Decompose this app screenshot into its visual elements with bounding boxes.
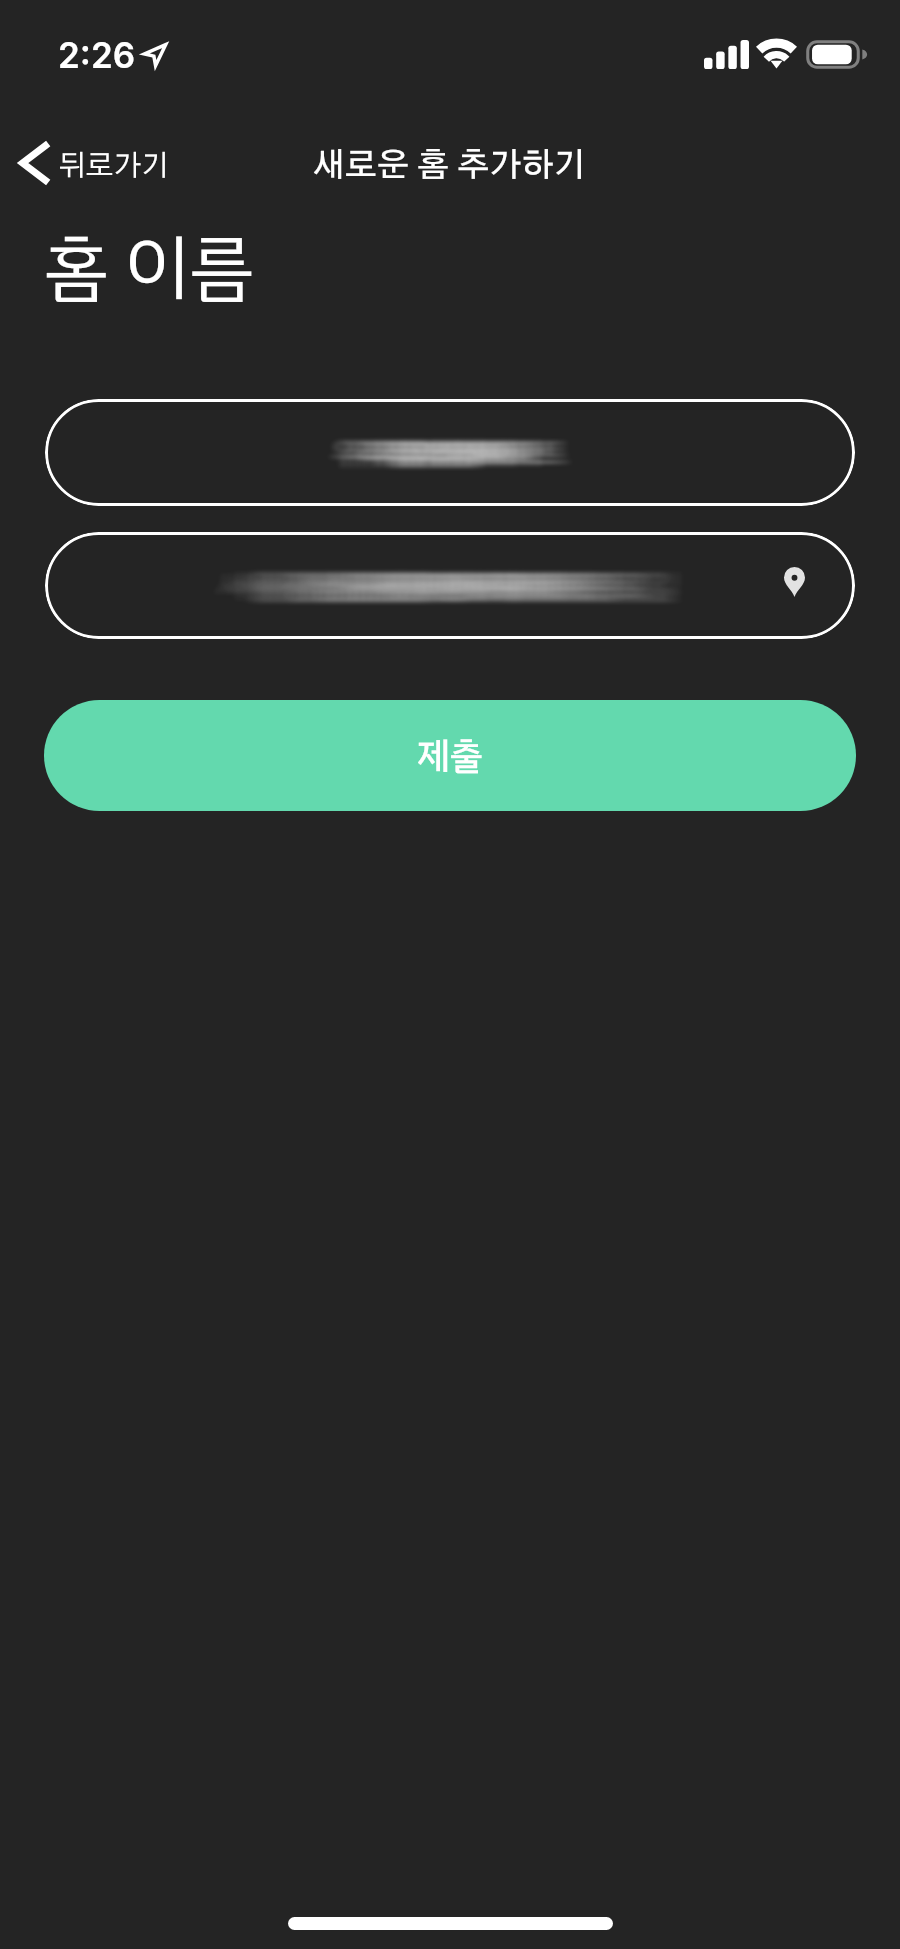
staticText: 서울 강남구 테헤란로길 — [278, 562, 579, 610]
staticText: 제출 — [417, 728, 484, 784]
staticText: 우리집 아파트 — [352, 432, 515, 476]
staticText: 서울 강남구 테헤란로길 — [291, 562, 592, 610]
staticText: 서울 강남구 테헤란로길 — [312, 562, 613, 610]
staticText: 우리집 아파트 — [347, 432, 510, 476]
staticText: 서울 강남구 테헤란로길 — [276, 562, 577, 610]
staticText: 우리집 아파트 — [382, 432, 545, 476]
staticText: 서울 강남구 테헤란로길 — [239, 562, 540, 610]
staticText: 서울 강남구 테헤란로길 — [303, 562, 604, 610]
button[interactable]: 우리집 아파트 — [45, 399, 855, 506]
staticText: 우리집 아파트 — [349, 432, 512, 476]
staticText: 서울 강남구 테헤란로길 — [277, 562, 578, 610]
staticText: 서울 강남구 테헤란로길 — [299, 562, 600, 610]
staticText: 서울 강남구 테헤란로길 — [343, 562, 644, 610]
staticText: 우리집 아파트 — [345, 432, 508, 476]
staticText: 서울 강남구 테헤란로길 — [215, 562, 516, 610]
staticText: 서울 강남구 테헤란로길 — [234, 562, 535, 610]
staticText: 서울 강남구 테헤란로길 — [256, 562, 557, 610]
staticText: 우리집 아파트 — [384, 432, 547, 476]
staticText: 서울 강남구 테헤란로길 — [305, 562, 606, 610]
staticText: 서울 강남구 테헤란로길 — [254, 562, 555, 610]
button[interactable]: 서울 강남구 테헤란로길 — [45, 532, 855, 639]
staticText: 우리집 아파트 — [343, 432, 506, 476]
staticText: 우리집 아파트 — [380, 432, 543, 476]
staticText: 서울 강남구 테헤란로길 — [353, 562, 654, 610]
staticText: 서울 강남구 테헤란로길 — [297, 562, 598, 610]
staticText: 우리집 아파트 — [368, 432, 531, 476]
staticText: 우리집 아파트 — [352, 432, 515, 476]
staticText: 우리집 아파트 — [362, 432, 525, 476]
staticText: 우리집 아파트 — [379, 432, 542, 476]
staticText: 우리집 아파트 — [387, 432, 550, 476]
button[interactable]: Back — [7, 127, 180, 199]
staticText: 서울 강남구 테헤란로길 — [268, 562, 569, 610]
staticText: 우리집 아파트 — [329, 432, 492, 476]
staticText: 우리집 아파트 — [385, 432, 548, 476]
staticText: 우리집 아파트 — [335, 432, 498, 476]
staticText: 우리집 아파트 — [407, 432, 570, 476]
staticText: 우리집 아파트 — [375, 432, 538, 476]
staticText: 서울 강남구 테헤란로길 — [242, 562, 543, 610]
staticText: 우리집 아파트 — [332, 432, 495, 476]
staticText: 새로운 홈 추가하기 — [313, 150, 586, 183]
staticText: 우리집 아파트 — [402, 432, 565, 476]
staticText: 우리집 아파트 — [397, 432, 560, 476]
staticText: 서울 강남구 테헤란로길 — [329, 562, 630, 610]
staticText: 서울 강남구 테헤란로길 — [336, 562, 637, 610]
staticText: 우리집 아파트 — [363, 432, 526, 476]
staticText: 서울 강남구 테헤란로길 — [341, 562, 642, 610]
staticText: 우리집 아파트 — [356, 432, 519, 476]
staticText: 서울 강남구 테헤란로길 — [298, 562, 599, 610]
staticText: 우리집 아파트 — [365, 432, 528, 476]
staticText: 서울 강남구 테헤란로길 — [368, 562, 669, 610]
staticText: 우리집 아파트 — [398, 432, 561, 476]
staticText: 우리집 아파트 — [409, 432, 572, 476]
staticText: 서울 강남구 테헤란로길 — [236, 562, 537, 610]
staticText: 우리집 아파트 — [392, 432, 555, 476]
staticText: 서울 강남구 테헤란로길 — [339, 562, 640, 610]
staticText: 우리집 아파트 — [366, 432, 529, 476]
staticText: 서울 강남구 테헤란로길 — [384, 562, 685, 610]
staticText: 서울 강남구 테헤란로길 — [274, 562, 575, 610]
staticText: 서울 강남구 테헤란로길 — [364, 562, 665, 610]
staticText: 우리집 아파트 — [348, 432, 511, 476]
staticText: 서울 강남구 테헤란로길 — [371, 562, 672, 610]
staticText: 서울 강남구 테헤란로길 — [253, 562, 554, 610]
staticText: 우리집 아파트 — [336, 432, 499, 476]
staticText: 우리집 아파트 — [404, 432, 567, 476]
staticText: 우리집 아파트 — [403, 432, 566, 476]
staticText: 우리집 아파트 — [390, 432, 553, 476]
staticText: 우리집 아파트 — [353, 432, 516, 476]
staticText: 서울 강남구 테헤란로길 — [249, 562, 550, 610]
button[interactable]: Pick location — [768, 556, 820, 608]
button[interactable]: 제출 — [44, 700, 856, 811]
staticText: 우리집 아파트 — [393, 432, 556, 476]
staticText: 우리집 아파트 — [359, 432, 522, 476]
staticText: 서울 강남구 테헤란로길 — [350, 562, 651, 610]
staticText: 우리집 아파트 — [327, 432, 490, 476]
staticText: 우리집 아파트 — [337, 432, 500, 476]
staticText: 서울 강남구 테헤란로길 — [326, 562, 627, 610]
staticText: 서울 강남구 테헤란로길 — [370, 562, 671, 610]
staticText: 우리집 아파트 — [389, 432, 552, 476]
staticText: 서울 강남구 테헤란로길 — [260, 562, 561, 610]
staticText: 우리집 아파트 — [340, 432, 503, 476]
staticText: 서울 강남구 테헤란로길 — [301, 562, 602, 610]
staticText: 우리집 아파트 — [388, 432, 551, 476]
staticText: 서울 강남구 테헤란로길 — [220, 562, 521, 610]
staticText: 서울 강남구 테헤란로길 — [232, 562, 533, 610]
staticText: 서울 강남구 테헤란로길 — [288, 562, 589, 610]
staticText: 서울 강남구 테헤란로길 — [356, 562, 657, 610]
staticText: 서울 강남구 테헤란로길 — [318, 562, 619, 610]
staticText: 우리집 아파트 — [341, 432, 504, 476]
staticText: 서울 강남구 테헤란로길 — [218, 562, 519, 610]
staticText: 서울 강남구 테헤란로길 — [375, 562, 676, 610]
staticText: 우리집 아파트 — [395, 432, 558, 476]
staticText: 서울 강남구 테헤란로길 — [265, 562, 566, 610]
staticText: 서울 강남구 테헤란로길 — [374, 562, 675, 610]
staticText: 서울 강남구 테헤란로길 — [213, 562, 514, 610]
staticText: 서울 강남구 테헤란로길 — [360, 562, 661, 610]
staticText: 우리집 아파트 — [378, 432, 541, 476]
staticText: 우리집 아파트 — [338, 432, 501, 476]
staticText: 서울 강남구 테헤란로길 — [327, 562, 628, 610]
